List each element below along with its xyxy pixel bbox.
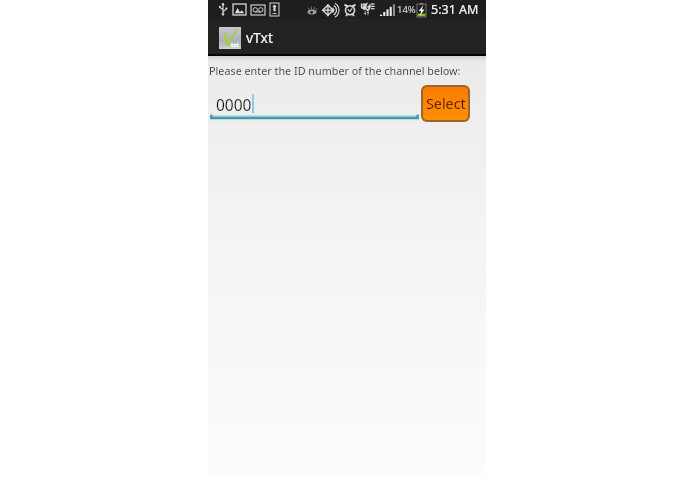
staticText: 5:31 AM [431, 1, 479, 18]
staticText: Select [426, 94, 466, 113]
button[interactable]: Select [421, 85, 470, 122]
staticText: Please enter the ID number of the channe… [209, 63, 461, 78]
button[interactable]: txt [208, 19, 486, 56]
staticText: 0000 [216, 94, 252, 115]
staticText: txt [231, 41, 239, 48]
staticText: vTxt [246, 28, 274, 47]
button[interactable]: Channel ID input field [210, 87, 419, 121]
staticText: 14% [397, 3, 416, 16]
